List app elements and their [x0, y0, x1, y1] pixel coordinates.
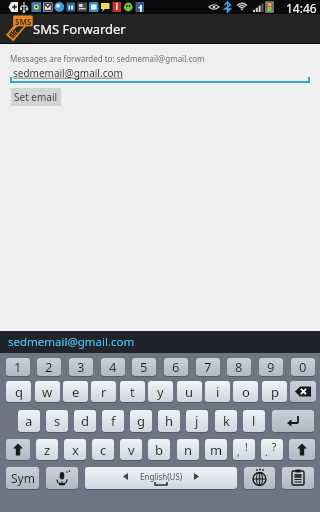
button[interactable]: f	[102, 410, 124, 432]
staticText: 3	[77, 358, 85, 376]
button[interactable]: 7	[196, 358, 220, 376]
button[interactable]: enter	[272, 410, 314, 432]
staticText: .	[265, 445, 268, 459]
staticText: sedmemail@gmail.com	[8, 334, 135, 350]
button[interactable]: Sym	[6, 467, 39, 489]
staticText: c	[100, 441, 107, 459]
staticText: h	[165, 412, 174, 430]
button[interactable]: d	[74, 410, 96, 432]
staticText: z	[44, 441, 51, 459]
button[interactable]: y	[148, 381, 173, 402]
staticText: 8	[235, 358, 243, 376]
staticText: 2	[45, 358, 53, 376]
staticText: 5	[140, 358, 148, 376]
staticText: p	[271, 383, 279, 401]
staticText: n	[184, 441, 193, 459]
staticText: 9	[267, 358, 275, 376]
staticText: r	[101, 383, 107, 401]
button[interactable]: v	[120, 439, 142, 460]
button[interactable]: n	[177, 439, 199, 460]
button[interactable]: Set email	[11, 88, 61, 106]
button[interactable]: space	[85, 467, 237, 489]
button[interactable]: b	[148, 439, 170, 460]
button[interactable]: h	[158, 410, 180, 432]
button[interactable]: 0	[291, 358, 315, 376]
button[interactable]: shift	[6, 439, 30, 460]
button[interactable]: m	[205, 439, 227, 460]
button[interactable]: period	[261, 439, 283, 460]
button[interactable]: l	[243, 410, 265, 432]
staticText: b	[155, 441, 163, 459]
staticText: f	[111, 412, 116, 430]
button[interactable]: globe	[244, 467, 275, 489]
button[interactable]: 9	[259, 358, 283, 376]
button[interactable]: k	[215, 410, 237, 432]
button[interactable]: r	[91, 381, 116, 402]
button[interactable]: sedmemail@gmail.com	[10, 66, 310, 83]
button[interactable]: i	[205, 381, 230, 402]
button[interactable]: 6	[164, 358, 188, 376]
button[interactable]: 2	[37, 358, 61, 376]
staticText: j	[195, 412, 199, 430]
staticText: s	[54, 412, 61, 430]
staticText: w	[42, 383, 53, 401]
button[interactable]: clip	[282, 467, 314, 489]
button[interactable]: w	[35, 381, 60, 402]
button[interactable]: j	[186, 410, 208, 432]
staticText: m	[210, 441, 223, 459]
button[interactable]: a	[18, 410, 40, 432]
staticText: 7	[204, 358, 212, 376]
button[interactable]: comma	[233, 439, 255, 460]
staticText: SMS	[15, 16, 32, 27]
staticText: i	[216, 383, 220, 401]
staticText: g	[137, 412, 145, 430]
staticText: d	[81, 412, 89, 430]
button[interactable]: z	[36, 439, 58, 460]
staticText: Sym	[11, 470, 35, 486]
button[interactable]: 3	[69, 358, 93, 376]
staticText: ,	[237, 445, 240, 459]
staticText: !	[245, 440, 248, 454]
staticText: l	[252, 412, 256, 430]
button[interactable]: sedmemail@gmail.com	[0, 331, 320, 353]
button[interactable]: 8	[227, 358, 251, 376]
staticText: y	[157, 383, 164, 401]
staticText: sedmemail@gmail.com	[13, 66, 123, 80]
staticText: o	[242, 383, 250, 401]
staticText: SMS Forwarder	[33, 20, 126, 38]
button[interactable]: p	[262, 381, 287, 402]
button[interactable]: 5	[132, 358, 156, 376]
button[interactable]: q	[6, 381, 31, 402]
button[interactable]: SMS	[0, 14, 320, 43]
staticText: 1	[14, 358, 22, 376]
staticText: 14:46	[286, 0, 317, 14]
staticText: Messages are forwarded to: sedmemail@gma…	[10, 53, 205, 64]
button[interactable]: 4	[101, 358, 125, 376]
button[interactable]: t	[120, 381, 145, 402]
button[interactable]: e	[63, 381, 88, 402]
button[interactable]: c	[92, 439, 114, 460]
staticText: a	[25, 412, 33, 430]
button[interactable]: x	[64, 439, 86, 460]
button[interactable]: shift	[289, 439, 315, 460]
staticText: ?	[272, 440, 277, 454]
staticText: t	[130, 383, 135, 401]
button[interactable]: g	[130, 410, 152, 432]
button[interactable]: u	[177, 381, 202, 402]
button[interactable]: s	[46, 410, 68, 432]
staticText: English(US)	[140, 471, 183, 482]
staticText: u	[185, 383, 194, 401]
button[interactable]: 1	[6, 358, 30, 376]
staticText: q	[15, 383, 23, 401]
staticText: 4	[109, 358, 117, 376]
button[interactable]: mic	[46, 467, 78, 489]
staticText: e	[72, 383, 80, 401]
button[interactable]: o	[233, 381, 258, 402]
staticText: v	[128, 441, 135, 459]
staticText: k	[223, 412, 230, 430]
button[interactable]: backspace	[290, 381, 316, 402]
staticText: x	[72, 441, 79, 459]
staticText: 6	[172, 358, 180, 376]
staticText: 0	[299, 358, 307, 376]
staticText: Set email	[14, 90, 58, 104]
